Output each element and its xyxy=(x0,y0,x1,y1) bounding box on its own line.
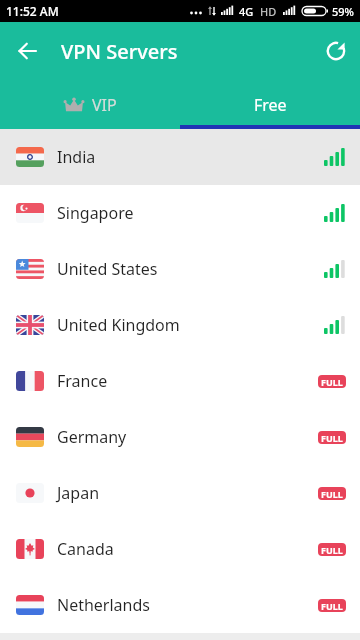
staticText: VPN Servers xyxy=(61,38,178,65)
staticText: FULL xyxy=(321,488,343,500)
staticText: FULL xyxy=(321,600,343,612)
button[interactable]: United States xyxy=(0,241,360,297)
staticText: FULL xyxy=(321,432,343,444)
button[interactable]: Germany xyxy=(0,409,360,465)
button[interactable]: Free xyxy=(180,80,360,129)
staticText: VIP xyxy=(92,94,117,116)
button[interactable] xyxy=(312,22,360,80)
staticText: FULL xyxy=(321,376,343,388)
button[interactable]: United Kingdom xyxy=(0,297,360,353)
button[interactable]: VIP xyxy=(0,80,180,129)
staticText: Japan xyxy=(57,482,100,504)
staticText: United States xyxy=(57,258,158,280)
staticText: 59% xyxy=(332,4,354,19)
button[interactable] xyxy=(0,22,56,80)
staticText: Germany xyxy=(57,426,127,448)
button[interactable]: Japan xyxy=(0,465,360,521)
staticText: 4G xyxy=(239,4,254,19)
staticText: Netherlands xyxy=(57,594,150,616)
staticText: India xyxy=(57,146,96,168)
button[interactable]: Singapore xyxy=(0,185,360,241)
staticText: 11:52 AM xyxy=(6,3,59,19)
staticText: United Kingdom xyxy=(57,314,180,336)
button[interactable]: India xyxy=(0,129,360,185)
staticText: Free xyxy=(254,94,287,116)
button[interactable]: Netherlands xyxy=(0,577,360,633)
button[interactable]: France xyxy=(0,353,360,409)
staticText: Singapore xyxy=(57,202,134,224)
staticText: FULL xyxy=(321,544,343,556)
staticText: Canada xyxy=(57,538,114,560)
staticText: HD xyxy=(260,4,277,19)
button[interactable]: Canada xyxy=(0,521,360,577)
staticText: France xyxy=(57,370,108,392)
